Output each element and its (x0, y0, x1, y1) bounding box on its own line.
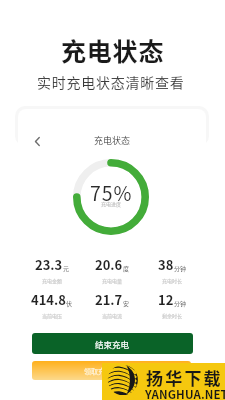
staticText: YANGHUA.NET (145, 386, 225, 400)
staticText: 38 (158, 255, 174, 274)
button[interactable]: 领取充电优惠红包 (32, 361, 191, 380)
staticText: 实时充电状态清晰查看 (37, 72, 185, 92)
staticText: 充电进度 (101, 200, 122, 207)
staticText: 23.3 (35, 255, 63, 274)
staticText: 充电电量 (102, 277, 123, 284)
staticText: 75% (90, 178, 133, 206)
staticText: 当前电流 (102, 312, 123, 319)
staticText: 度 (123, 264, 130, 273)
staticText: 剩余时长 (162, 312, 183, 319)
staticText: 安 (123, 299, 130, 308)
staticText: 20.6 (95, 255, 123, 274)
staticText: 扬华下载 (146, 365, 223, 390)
staticText: 21.7 (95, 290, 123, 309)
staticText: 充电金额 (42, 277, 63, 284)
staticText: 领取充电优惠红包 (84, 366, 140, 376)
button[interactable]: Back (26, 130, 48, 152)
staticText: 当前电压 (42, 312, 63, 319)
staticText: 充电状态 (94, 134, 131, 147)
staticText: 分钟 (174, 264, 187, 273)
staticText: 12 (158, 290, 174, 309)
staticText: 结束充电 (95, 338, 130, 350)
button[interactable]: 结束充电 (32, 333, 193, 354)
staticText: 414.8 (31, 290, 66, 309)
staticText: 伏 (66, 299, 73, 308)
staticText: 充电状态 (61, 32, 165, 68)
staticText: 元 (63, 264, 70, 273)
staticText: 充电时长 (162, 277, 183, 284)
staticText: 分钟 (174, 299, 187, 308)
